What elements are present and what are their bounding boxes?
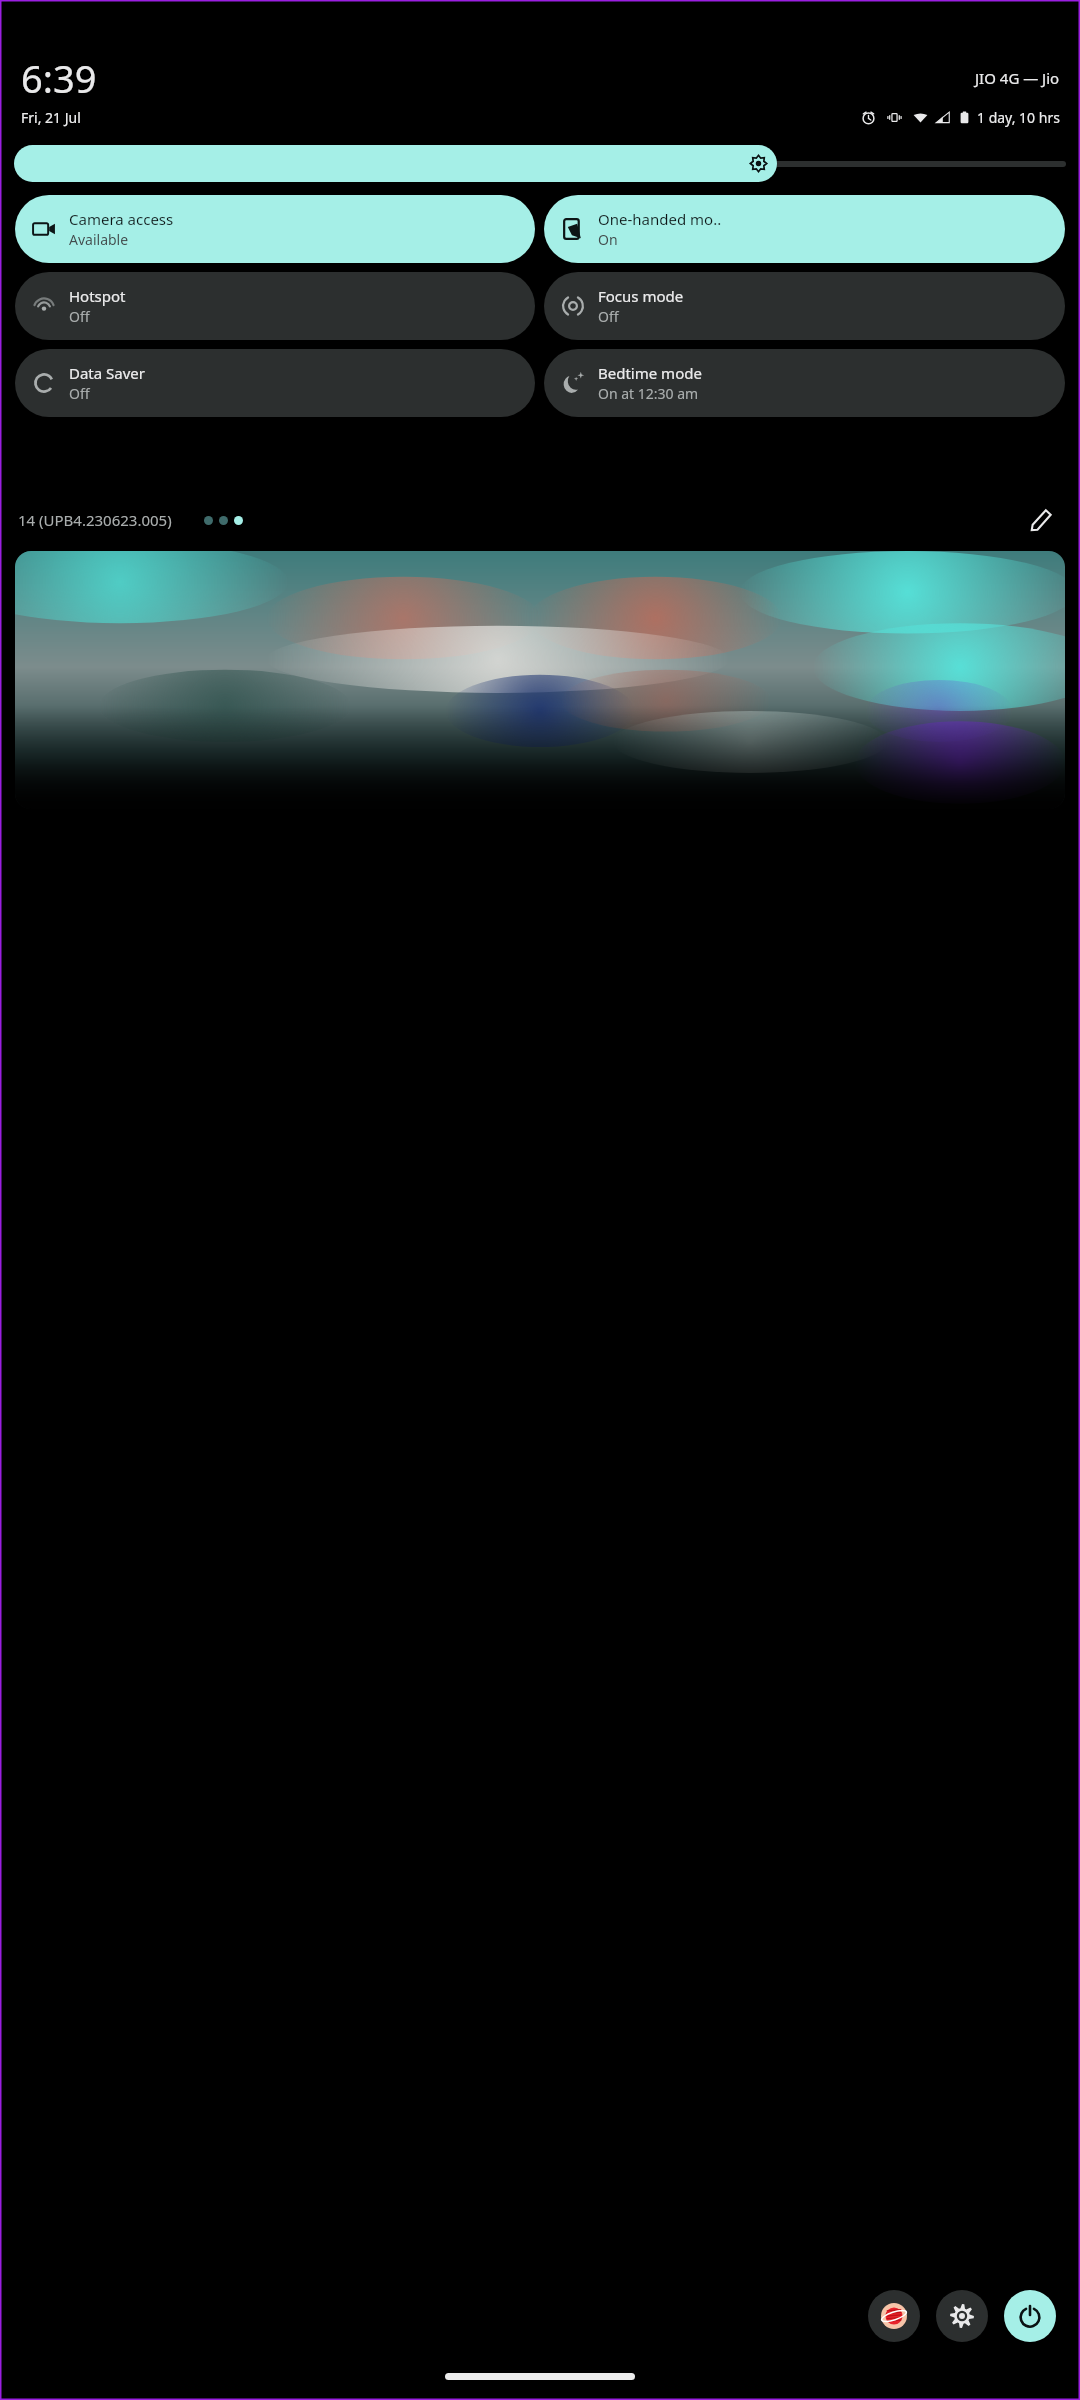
button[interactable]: Data Saver <box>15 349 535 417</box>
staticText: Bedtime mode <box>598 363 702 383</box>
button[interactable]: Power <box>1004 2290 1056 2342</box>
staticText: Off <box>69 307 90 326</box>
button[interactable] <box>15 551 1065 809</box>
staticText: Fri, 21 Jul <box>21 108 81 127</box>
staticText: One-handed mo.. <box>598 209 722 229</box>
staticText: JIO 4G — Jio <box>975 68 1060 88</box>
button[interactable]: Bedtime mode <box>544 349 1065 417</box>
staticText: Hotspot <box>69 286 126 306</box>
staticText: Focus mode <box>598 286 684 306</box>
staticText: Off <box>598 307 619 326</box>
staticText: 14 (UPB4.230623.005) <box>18 510 172 530</box>
staticText: Available <box>69 230 129 249</box>
button[interactable]: Edit tiles <box>1024 503 1058 537</box>
button[interactable]: Settings <box>936 2290 988 2342</box>
button[interactable]: Camera access <box>15 195 535 263</box>
staticText: 6:39 <box>21 52 97 104</box>
staticText: On <box>598 230 618 249</box>
button[interactable] <box>14 145 1066 182</box>
staticText: Off <box>69 384 90 403</box>
staticText: Data Saver <box>69 363 146 383</box>
staticText: On at 12:30 am <box>598 384 699 403</box>
button[interactable]: Focus mode <box>544 272 1065 340</box>
button[interactable]: User <box>868 2290 920 2342</box>
staticText: Camera access <box>69 209 174 229</box>
button[interactable]: One-handed mo.. <box>544 195 1065 263</box>
button[interactable]: Hotspot <box>15 272 535 340</box>
staticText: 1 day, 10 hrs <box>977 108 1060 127</box>
